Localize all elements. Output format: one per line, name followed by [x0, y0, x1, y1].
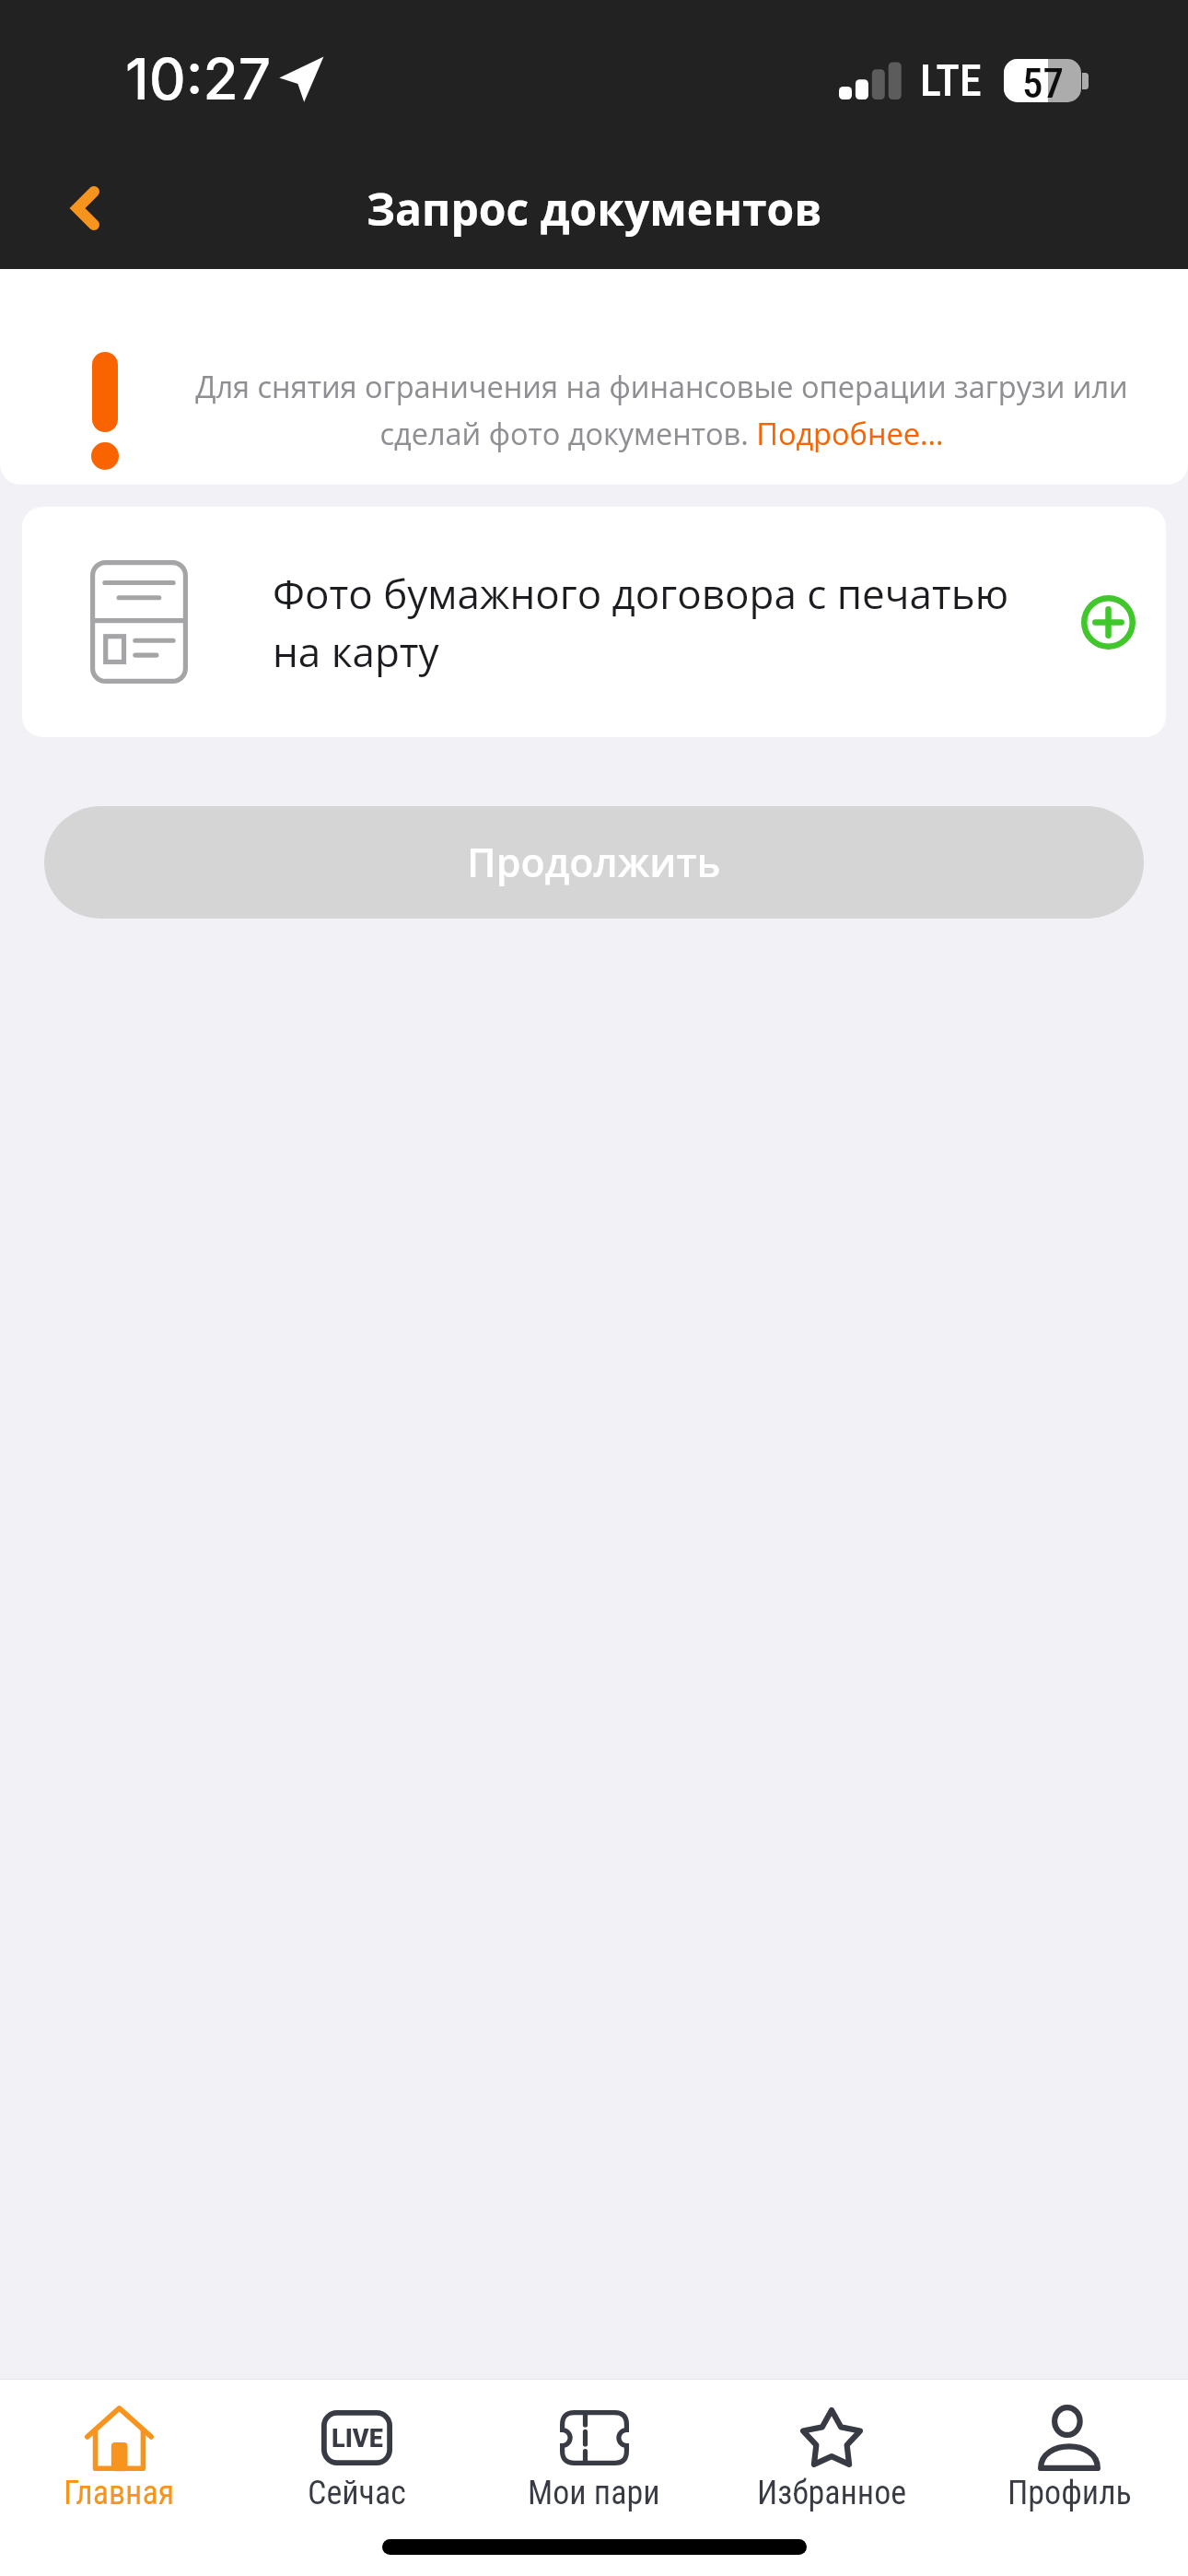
button[interactable]: Мои пари: [475, 2380, 713, 2527]
button[interactable]: Профиль: [950, 2380, 1188, 2527]
button[interactable]: LIVE: [238, 2380, 475, 2527]
staticText: Профиль: [1007, 2474, 1132, 2512]
button[interactable]: Избранное: [713, 2380, 950, 2527]
button[interactable]: Продолжить: [44, 806, 1144, 919]
button[interactable]: Для снятия ограничения на финансовые опе…: [0, 269, 1188, 485]
staticText: LTE: [920, 54, 982, 106]
button[interactable]: Back: [49, 171, 122, 245]
staticText: Фото бумажного договора с печатью на кар…: [273, 566, 1057, 679]
staticText: Избранное: [757, 2474, 907, 2512]
staticText: Для снятия ограничения на финансовые опе…: [181, 366, 1143, 454]
staticText: Мои пари: [528, 2474, 660, 2512]
button[interactable]: Фото бумажного договора с печатью на кар…: [22, 507, 1166, 737]
staticText: Запрос документов: [367, 179, 822, 239]
staticText: Главная: [64, 2474, 175, 2512]
staticText: Продолжить: [467, 835, 721, 889]
staticText: Сейчас: [308, 2474, 406, 2512]
button[interactable]: Главная: [0, 2380, 238, 2527]
staticText: 57: [1022, 59, 1064, 102]
button[interactable]: Add document: [1068, 582, 1147, 662]
staticText: 10:27: [125, 44, 272, 113]
staticText: LIVE: [332, 2424, 383, 2453]
